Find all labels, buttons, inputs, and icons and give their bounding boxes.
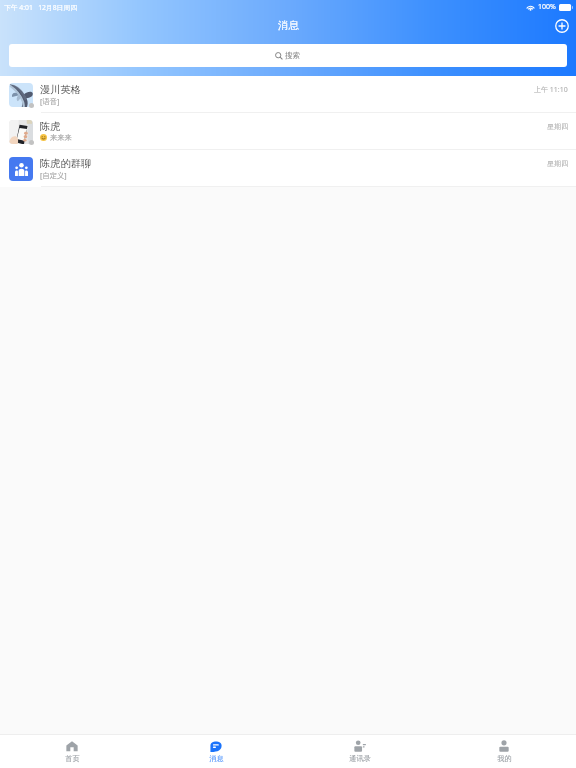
staticText: 我的 <box>497 754 512 763</box>
button[interactable]: 我的 <box>432 735 576 768</box>
staticText: 星期四 <box>547 122 568 131</box>
staticText: 通讯录 <box>349 754 371 763</box>
staticText: [自定义] <box>40 170 67 180</box>
staticText: 上午 11:10 <box>534 85 568 95</box>
staticText: [语音] <box>40 96 60 106</box>
button[interactable]: 消息 <box>144 735 288 768</box>
staticText: 漫川英格 <box>40 83 81 96</box>
staticText: 首页 <box>65 754 80 763</box>
staticText: 星期四 <box>547 159 568 168</box>
button[interactable]: 陈虎 <box>0 113 576 150</box>
button[interactable]: 通讯录 <box>288 735 432 768</box>
staticText: 消息 <box>209 754 224 763</box>
button[interactable]: 陈虎的群聊 <box>0 150 576 187</box>
button[interactable]: Add <box>552 16 572 36</box>
staticText: 下午 4:01 12月8日周四 <box>4 3 77 12</box>
staticText: 100% <box>538 2 556 12</box>
staticText: 来来来 <box>50 133 72 142</box>
button[interactable]: 首页 <box>0 735 144 768</box>
staticText: 搜索 <box>285 51 301 61</box>
button[interactable]: 漫川英格 <box>0 76 576 113</box>
staticText: 消息 <box>278 19 299 32</box>
staticText: 陈虎的群聊 <box>40 157 91 170</box>
button[interactable]: 搜索 <box>9 44 567 67</box>
staticText: 陈虎 <box>40 120 61 133</box>
